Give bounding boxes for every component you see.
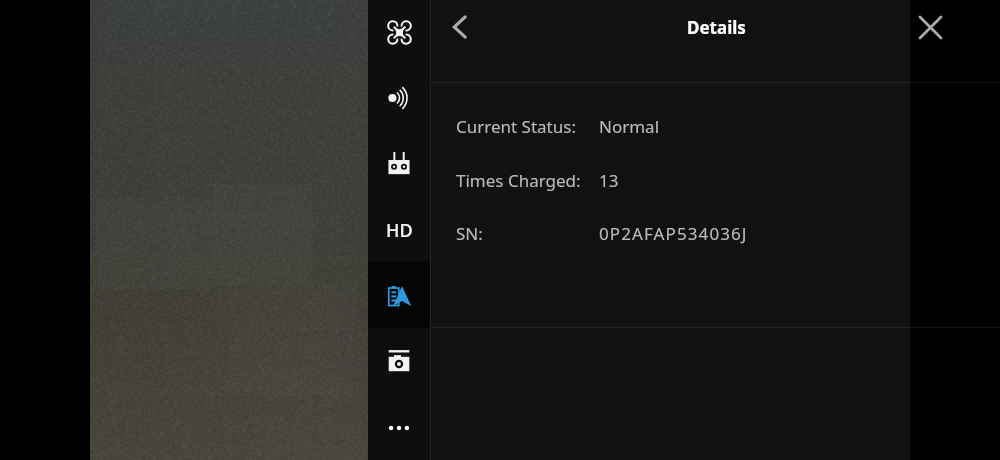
button[interactable]: More bbox=[368, 395, 430, 460]
button[interactable]: Transmission bbox=[368, 65, 430, 131]
staticText: Current Status: bbox=[456, 115, 576, 138]
staticText: Normal bbox=[599, 115, 660, 138]
button[interactable]: HD bbox=[368, 196, 430, 262]
button[interactable]: Current Status: bbox=[431, 100, 910, 152]
button[interactable]: Battery bbox=[368, 261, 430, 329]
button[interactable]: SN: bbox=[431, 207, 910, 259]
staticText: HD bbox=[386, 218, 413, 243]
staticText: Times Charged: bbox=[456, 169, 581, 192]
button[interactable]: Back bbox=[440, 7, 480, 47]
button[interactable]: Remote controller bbox=[368, 130, 430, 196]
button[interactable]: Camera bbox=[368, 328, 430, 394]
button[interactable]: Close bbox=[910, 7, 950, 47]
staticText: Details bbox=[687, 16, 746, 39]
staticText: SN: bbox=[456, 222, 483, 245]
staticText: 0P2AFAP534036J bbox=[599, 222, 748, 245]
button[interactable]: Aircraft bbox=[368, 0, 430, 65]
staticText: 13 bbox=[599, 169, 619, 192]
button[interactable]: Times Charged: bbox=[431, 154, 910, 206]
